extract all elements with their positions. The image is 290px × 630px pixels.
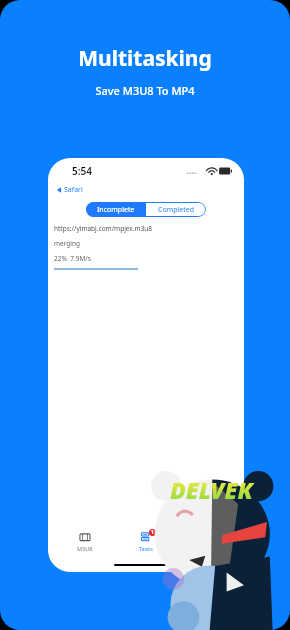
- staticText: https://yimabj.com/mpjex.m3u8: [54, 224, 153, 233]
- button[interactable]: Incomplete: [86, 202, 146, 217]
- button[interactable]: Completed: [146, 202, 206, 217]
- staticText: Incomplete: [97, 205, 135, 215]
- staticText: DELVEK: [170, 474, 253, 505]
- staticText: Settings: [197, 545, 218, 552]
- button[interactable]: Tasks: [122, 531, 170, 552]
- staticText: Completed: [158, 205, 195, 215]
- staticText: Save M3U8 To MP4: [95, 83, 195, 98]
- staticText: 22% 7.9M/s: [54, 254, 91, 263]
- staticText: Multitasking: [78, 44, 212, 73]
- staticText: 5:54: [72, 164, 92, 178]
- staticText: 1: [151, 529, 154, 536]
- staticText: Tasks: [139, 545, 153, 552]
- button[interactable]: M3U8: [61, 531, 109, 552]
- staticText: merging: [54, 239, 81, 248]
- button[interactable]: Settings: [183, 531, 231, 552]
- staticText: Safari: [64, 185, 83, 195]
- staticText: M3U8: [77, 545, 93, 552]
- button[interactable]: https://yimabj.com/mpjex.m3u8: [48, 224, 244, 270]
